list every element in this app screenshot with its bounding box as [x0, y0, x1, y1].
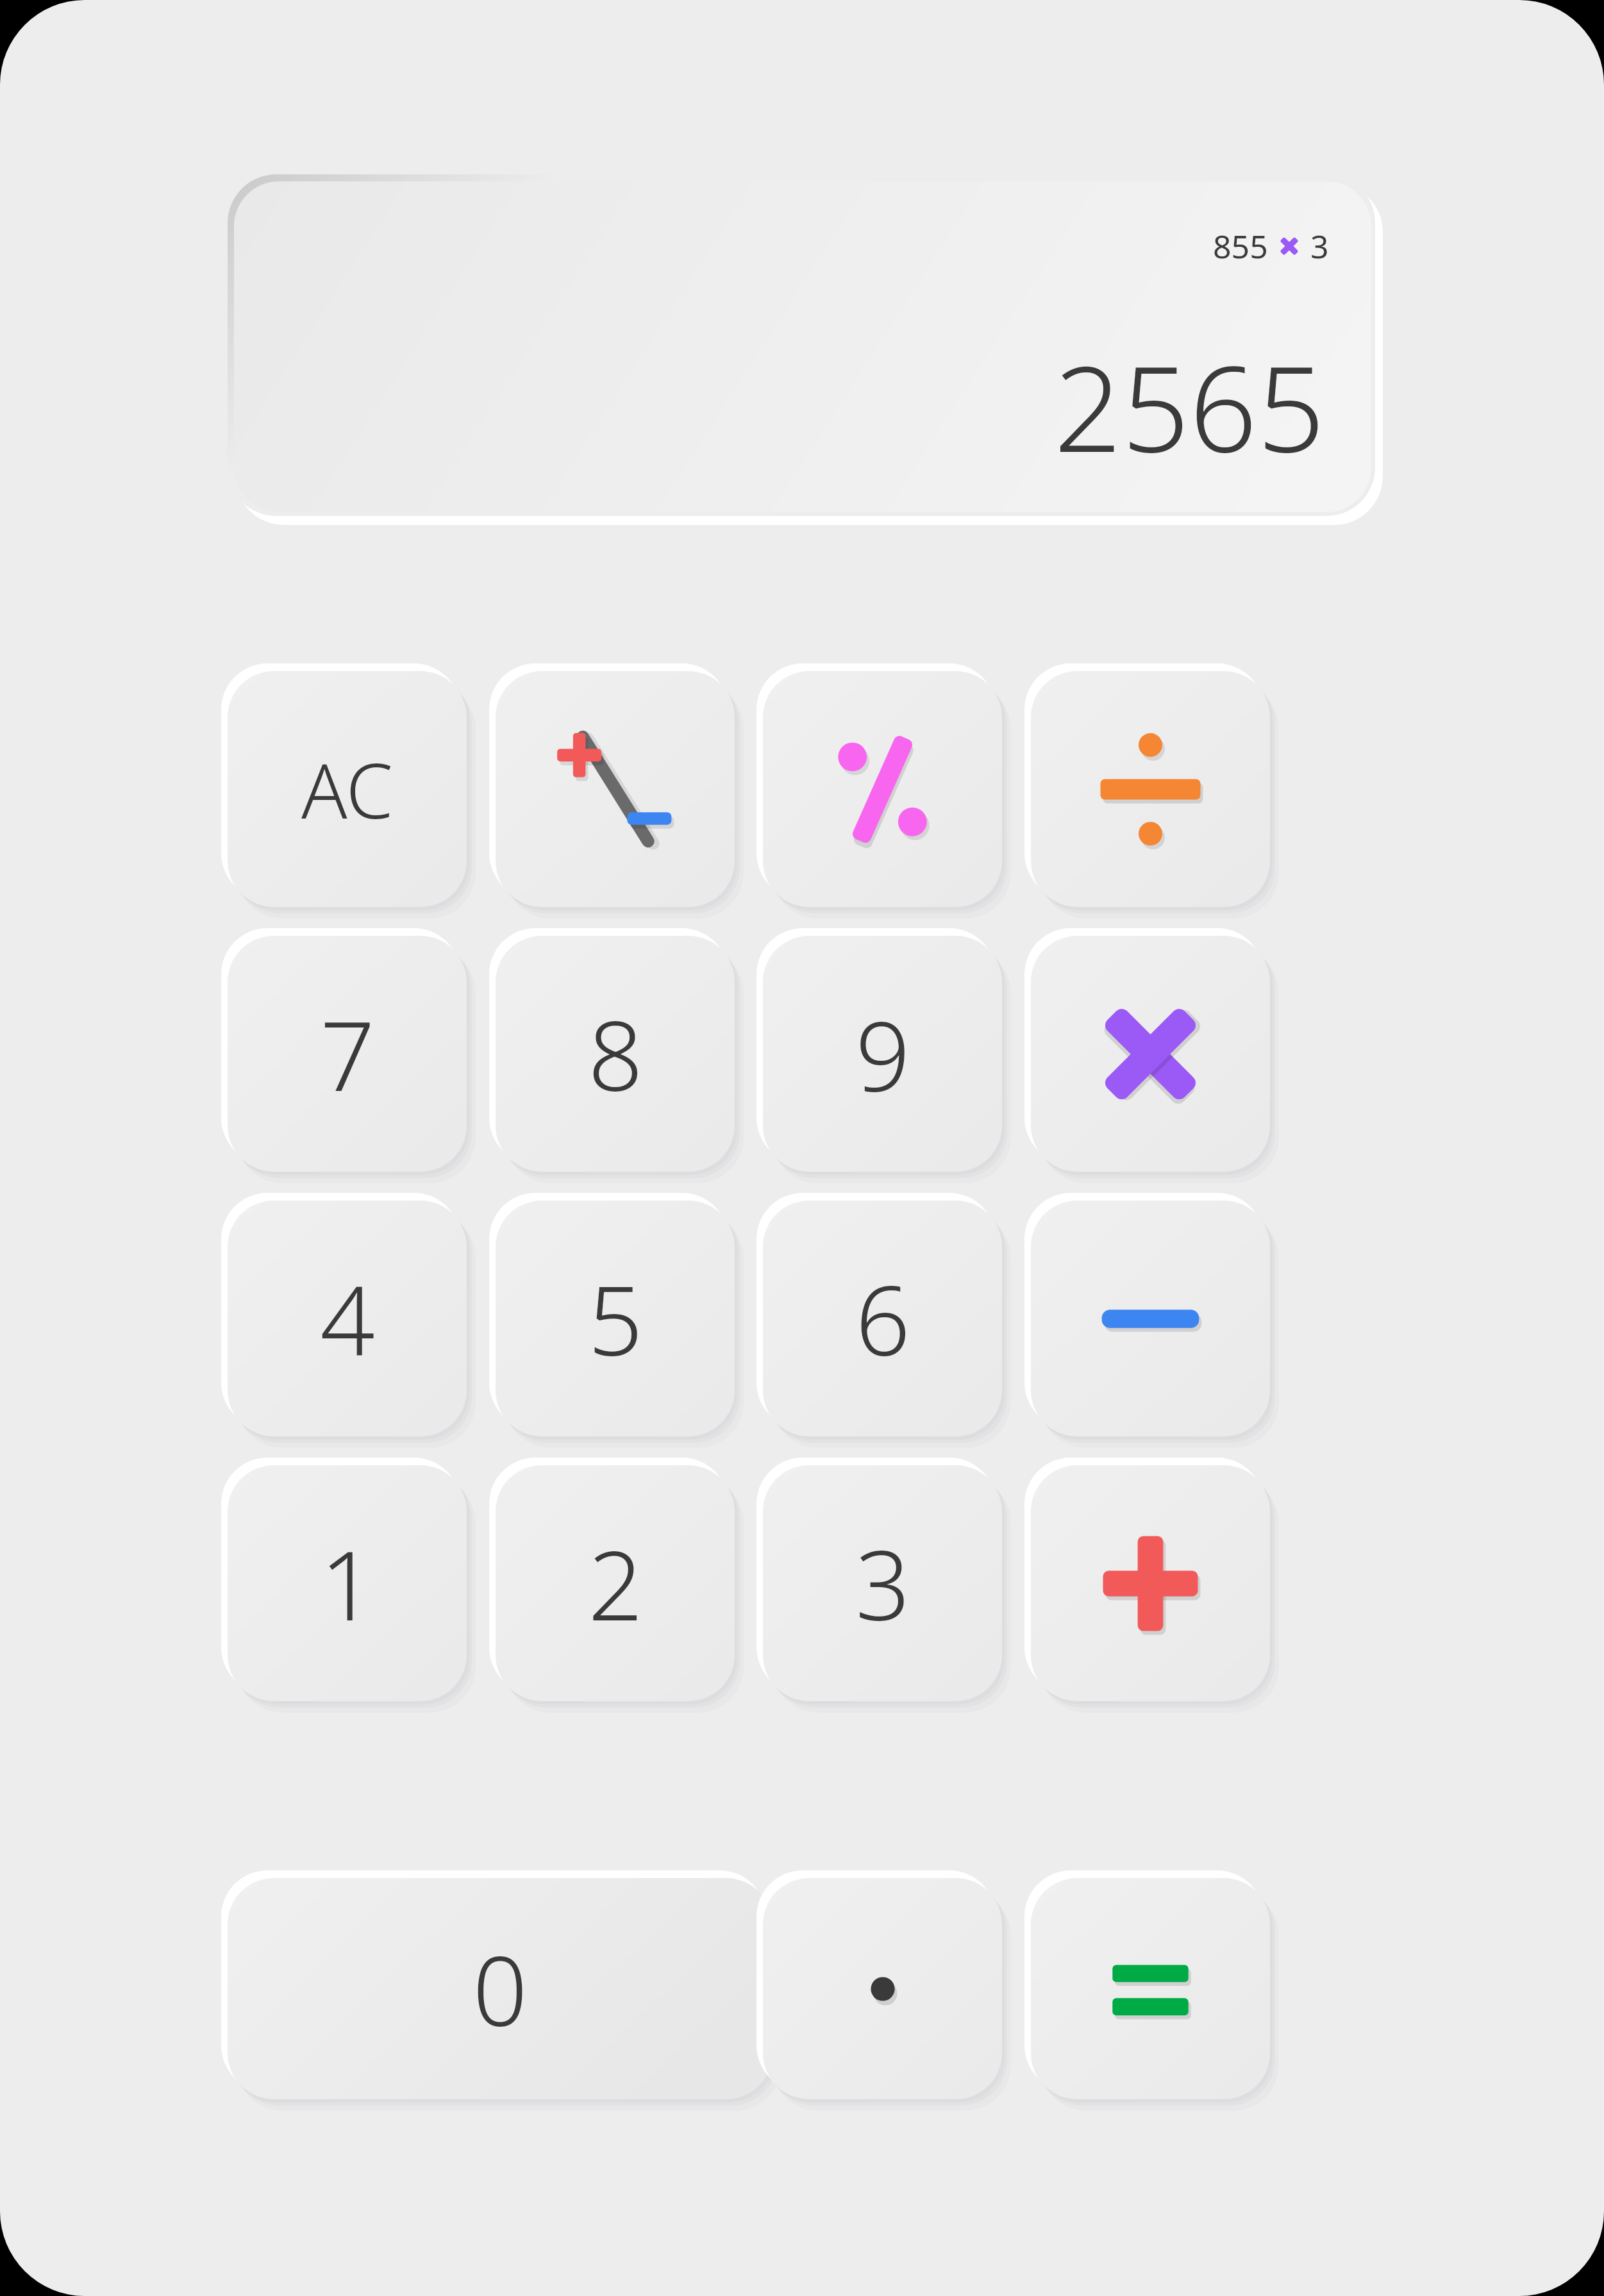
button[interactable]: 4	[0, 0, 239, 236]
button[interactable]: 0	[0, 0, 545, 221]
button[interactable]: Percent	[0, 0, 239, 236]
staticText: 2565	[1054, 325, 1325, 487]
button[interactable]: 2	[0, 0, 239, 236]
button[interactable]: 9	[0, 0, 239, 236]
staticText: 9	[855, 988, 910, 1119]
button[interactable]: 3	[0, 0, 239, 236]
button[interactable]: 5	[0, 0, 239, 236]
staticText: 7	[320, 988, 375, 1119]
staticText: 6	[855, 1253, 910, 1384]
button[interactable]: AC	[0, 0, 239, 236]
button[interactable]: Equals	[0, 0, 239, 221]
button[interactable]: 7	[0, 0, 239, 236]
staticText: 1	[320, 1518, 375, 1649]
button[interactable]: 6	[0, 0, 239, 236]
staticText: 0	[472, 1924, 528, 2054]
staticText: 2	[588, 1518, 643, 1649]
staticText: 4	[320, 1253, 375, 1384]
staticText: AC	[301, 738, 393, 841]
button[interactable]: Subtract	[0, 0, 239, 236]
staticText: 8	[588, 988, 643, 1119]
button[interactable]: 1	[0, 0, 239, 236]
button[interactable]: Plus minus sign	[0, 0, 239, 236]
button[interactable]: Add	[0, 0, 239, 236]
staticText: 3	[1302, 224, 1329, 268]
button[interactable]: Decimal point	[0, 0, 239, 221]
staticText: 3	[855, 1518, 910, 1649]
staticText: 855	[1213, 224, 1276, 268]
button[interactable]: Multiply	[0, 0, 239, 236]
staticText: 5	[588, 1253, 643, 1384]
button[interactable]: 8	[0, 0, 239, 236]
button[interactable]: Divide	[0, 0, 239, 236]
